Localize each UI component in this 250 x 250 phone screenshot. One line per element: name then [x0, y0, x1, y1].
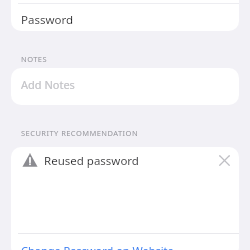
staticText: Password: [21, 12, 74, 28]
button[interactable]: [11, 68, 239, 105]
button[interactable]: Change Password on Website: [11, 234, 239, 250]
staticText: Reused password: [44, 153, 139, 169]
staticText: SECURITY RECOMMENDATION: [21, 128, 139, 138]
staticText: NOTES: [21, 54, 48, 64]
button[interactable]: [11, 0, 239, 31]
other: Warning: [21, 151, 39, 169]
button[interactable]: Dismiss recommendation: [216, 152, 233, 169]
staticText: Change Password on Website: [21, 243, 174, 250]
staticText: Add Notes: [21, 77, 75, 92]
